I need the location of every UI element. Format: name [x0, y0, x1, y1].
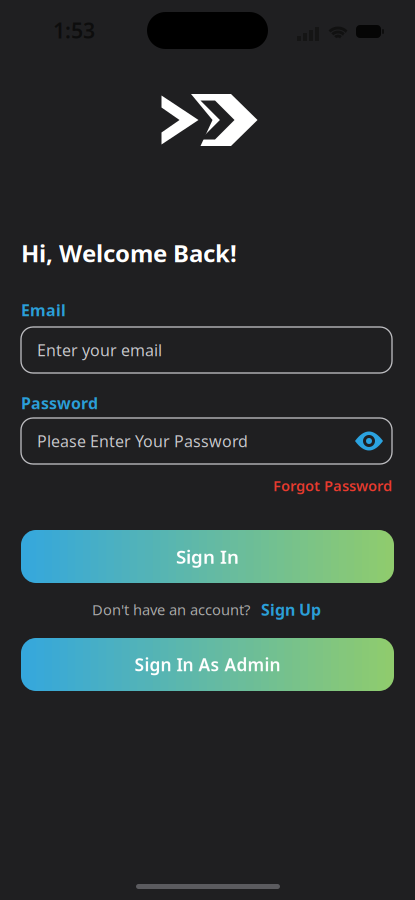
- staticText: Don't have an account?: [92, 600, 250, 619]
- button[interactable]: Sign In As Admin: [21, 638, 394, 691]
- staticText: Enter your email: [37, 339, 162, 361]
- staticText: Forgot Password: [273, 476, 392, 495]
- staticText: Sign Up: [261, 599, 321, 620]
- button[interactable]: Sign In: [21, 530, 394, 583]
- staticText: Hi, Welcome Back!: [21, 237, 237, 269]
- button[interactable]: Show Password: [355, 431, 383, 450]
- button[interactable]: Forgot Password: [273, 476, 392, 495]
- staticText: 1:53: [53, 16, 95, 44]
- staticText: Please Enter Your Password: [37, 430, 248, 452]
- button[interactable]: Sign Up: [250, 599, 321, 620]
- staticText: Email: [21, 299, 66, 321]
- staticText: Password: [21, 392, 98, 414]
- staticText: Sign In: [176, 544, 239, 569]
- staticText: Sign In As Admin: [134, 653, 280, 676]
